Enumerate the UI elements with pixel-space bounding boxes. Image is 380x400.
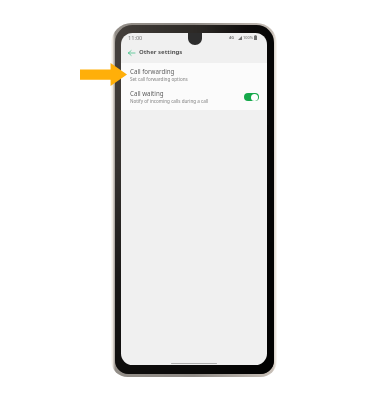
staticText: Notify of incoming calls during a call bbox=[130, 98, 209, 104]
staticText: Other settings bbox=[139, 48, 183, 56]
button[interactable]: Back bbox=[125, 47, 137, 59]
staticText: Set call forwarding options bbox=[130, 76, 188, 82]
staticText: 11:00 bbox=[128, 34, 143, 42]
staticText: Call waiting bbox=[130, 89, 164, 97]
button[interactable]: Call waiting toggle bbox=[244, 93, 259, 101]
staticText: 4G bbox=[229, 35, 235, 40]
staticText: 100% bbox=[243, 35, 253, 40]
button[interactable]: Call forwarding bbox=[121, 63, 267, 86]
staticText: Call forwarding bbox=[130, 67, 175, 75]
button[interactable]: Call waiting bbox=[121, 85, 267, 108]
